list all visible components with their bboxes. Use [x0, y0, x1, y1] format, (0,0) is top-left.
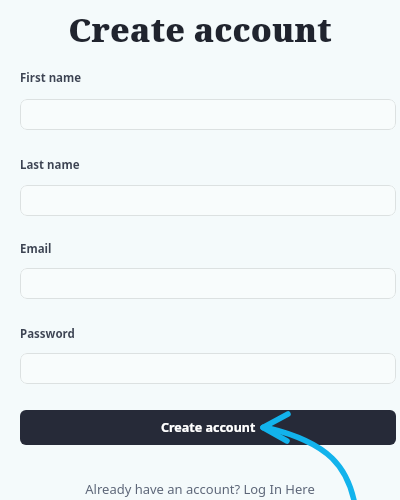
- button[interactable]: Already have an account? Log In Here: [85, 480, 315, 498]
- staticText: Create account: [161, 419, 256, 436]
- button[interactable]: First name: [20, 99, 396, 130]
- button[interactable]: Last name: [20, 185, 396, 216]
- button[interactable]: Create account: [20, 410, 396, 445]
- staticText: Password: [20, 326, 75, 342]
- staticText: Create account: [68, 7, 332, 52]
- staticText: Last name: [20, 157, 80, 173]
- staticText: First name: [20, 70, 82, 86]
- staticText: Email: [20, 241, 52, 257]
- button[interactable]: Password: [20, 353, 396, 384]
- button[interactable]: Email: [20, 268, 396, 299]
- staticText: Already have an account? Log In Here: [85, 480, 315, 498]
